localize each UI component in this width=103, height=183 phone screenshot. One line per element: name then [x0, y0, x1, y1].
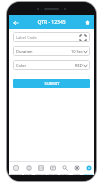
- button[interactable]: Scan barcode: [78, 33, 87, 42]
- button[interactable]: Label Code: [13, 32, 90, 42]
- button[interactable]: Latest: [70, 161, 82, 175]
- staticText: 10 Sec: [71, 49, 83, 54]
- staticText: SUBMIT: [44, 81, 60, 86]
- staticText: Design: [24, 172, 32, 175]
- staticText: Multi Inst: [35, 172, 46, 175]
- button[interactable]: Coverage: [46, 161, 58, 175]
- staticText: RED: [75, 63, 83, 68]
- button[interactable]: Back: [9, 16, 22, 29]
- staticText: Finders: [60, 172, 69, 175]
- staticText: Dashboard: [9, 172, 22, 175]
- staticText: Latest: [73, 172, 80, 175]
- button[interactable]: Home: [81, 16, 94, 29]
- staticText: QTR - 12345: [37, 19, 66, 26]
- button[interactable]: Color: [13, 60, 90, 70]
- button[interactable]: Settings: [82, 161, 94, 175]
- button[interactable]: Finders: [58, 161, 70, 175]
- staticText: Duration: [16, 49, 33, 54]
- button[interactable]: SUBMIT: [13, 79, 90, 88]
- button[interactable]: Duration: [13, 46, 90, 56]
- button[interactable]: Design: [22, 161, 34, 175]
- staticText: Label Code: [16, 35, 37, 40]
- button[interactable]: Multi Inst: [34, 161, 46, 175]
- staticText: Coverage: [47, 172, 58, 175]
- staticText: Color: [16, 63, 27, 68]
- button[interactable]: Dashboard: [9, 161, 22, 175]
- staticText: Settings: [83, 172, 93, 175]
